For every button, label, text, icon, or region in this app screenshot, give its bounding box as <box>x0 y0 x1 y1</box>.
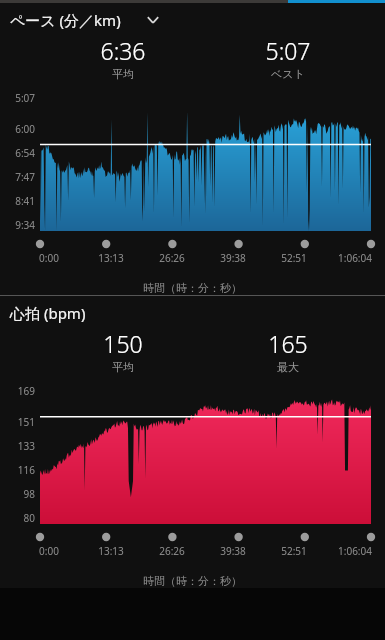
staticText: 116 <box>17 463 35 477</box>
staticText: ペース (分／km) <box>10 10 121 30</box>
staticText: 6:36 <box>100 35 146 66</box>
staticText: 平均 <box>112 67 134 81</box>
staticText: 13:13 <box>98 544 124 558</box>
staticText: 7:47 <box>15 170 35 184</box>
staticText: 151 <box>17 415 35 429</box>
staticText: 52:51 <box>281 544 307 558</box>
staticText: 52:51 <box>281 251 307 265</box>
staticText: 5:07 <box>15 91 35 105</box>
staticText: 165 <box>268 328 308 359</box>
staticText: 0:00 <box>39 251 59 265</box>
staticText: 39:38 <box>220 251 246 265</box>
staticText: 0:00 <box>39 544 59 558</box>
staticText: 169 <box>17 384 35 398</box>
staticText: 80 <box>23 511 35 525</box>
staticText: 98 <box>23 487 35 501</box>
staticText: 最大 <box>277 360 299 374</box>
staticText: 時間（時：分：秒） <box>143 574 242 588</box>
staticText: 6:54 <box>15 146 35 160</box>
staticText: 9:34 <box>15 218 35 232</box>
other: Change metric <box>143 10 163 30</box>
button[interactable]: ペース (分／km) <box>0 3 385 32</box>
staticText: ベスト <box>271 67 305 81</box>
button[interactable]: 心拍 (bpm) <box>0 296 385 325</box>
staticText: 5:07 <box>265 35 311 66</box>
staticText: 平均 <box>112 360 134 374</box>
staticText: 150 <box>103 328 143 359</box>
staticText: 133 <box>17 439 35 453</box>
staticText: 13:13 <box>98 251 124 265</box>
staticText: 心拍 (bpm) <box>10 303 86 323</box>
staticText: 39:38 <box>220 544 246 558</box>
staticText: 6:00 <box>15 122 35 136</box>
staticText: 26:26 <box>159 544 185 558</box>
staticText: 1:06:04 <box>338 251 372 265</box>
staticText: 8:41 <box>15 194 35 208</box>
staticText: 26:26 <box>159 251 185 265</box>
staticText: 1:06:04 <box>338 544 372 558</box>
staticText: 時間（時：分：秒） <box>143 281 242 295</box>
